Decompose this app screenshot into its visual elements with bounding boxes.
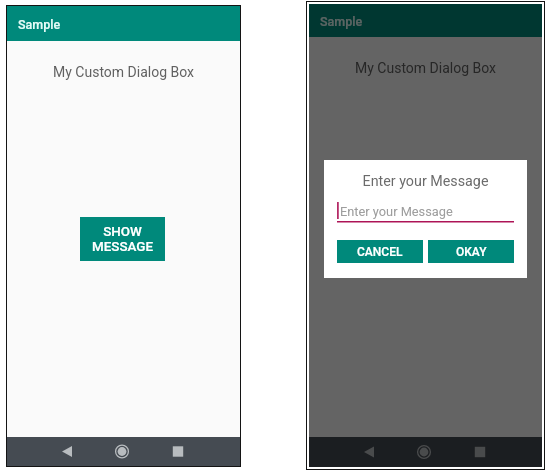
button[interactable]: Back bbox=[45, 437, 89, 466]
button[interactable]: Sample bbox=[309, 4, 542, 37]
staticText: My Custom Dialog Box bbox=[53, 64, 194, 80]
staticText: Sample bbox=[18, 17, 61, 32]
button[interactable]: Home bbox=[402, 437, 446, 467]
button[interactable]: Recent apps bbox=[156, 437, 200, 466]
staticText: Enter your Message bbox=[340, 204, 453, 219]
button[interactable]: Home bbox=[100, 437, 144, 466]
staticText: SHOW MESSAGE bbox=[394, 220, 455, 250]
button[interactable]: OKAY bbox=[428, 240, 514, 263]
staticText: My Custom Dialog Box bbox=[355, 60, 496, 76]
staticText: Sample bbox=[320, 14, 363, 29]
button[interactable]: Back bbox=[347, 437, 391, 467]
button[interactable]: CANCEL bbox=[337, 240, 423, 263]
staticText: SHOW MESSAGE bbox=[92, 224, 153, 254]
button[interactable]: Recent apps bbox=[458, 437, 502, 467]
staticText: Enter your Message bbox=[324, 173, 527, 190]
button[interactable]: SHOW MESSAGE bbox=[80, 217, 165, 261]
staticText: CANCEL bbox=[357, 245, 403, 259]
button[interactable]: Sample bbox=[7, 6, 240, 41]
button[interactable]: SHOW MESSAGE bbox=[382, 213, 467, 257]
staticText: OKAY bbox=[456, 245, 487, 259]
